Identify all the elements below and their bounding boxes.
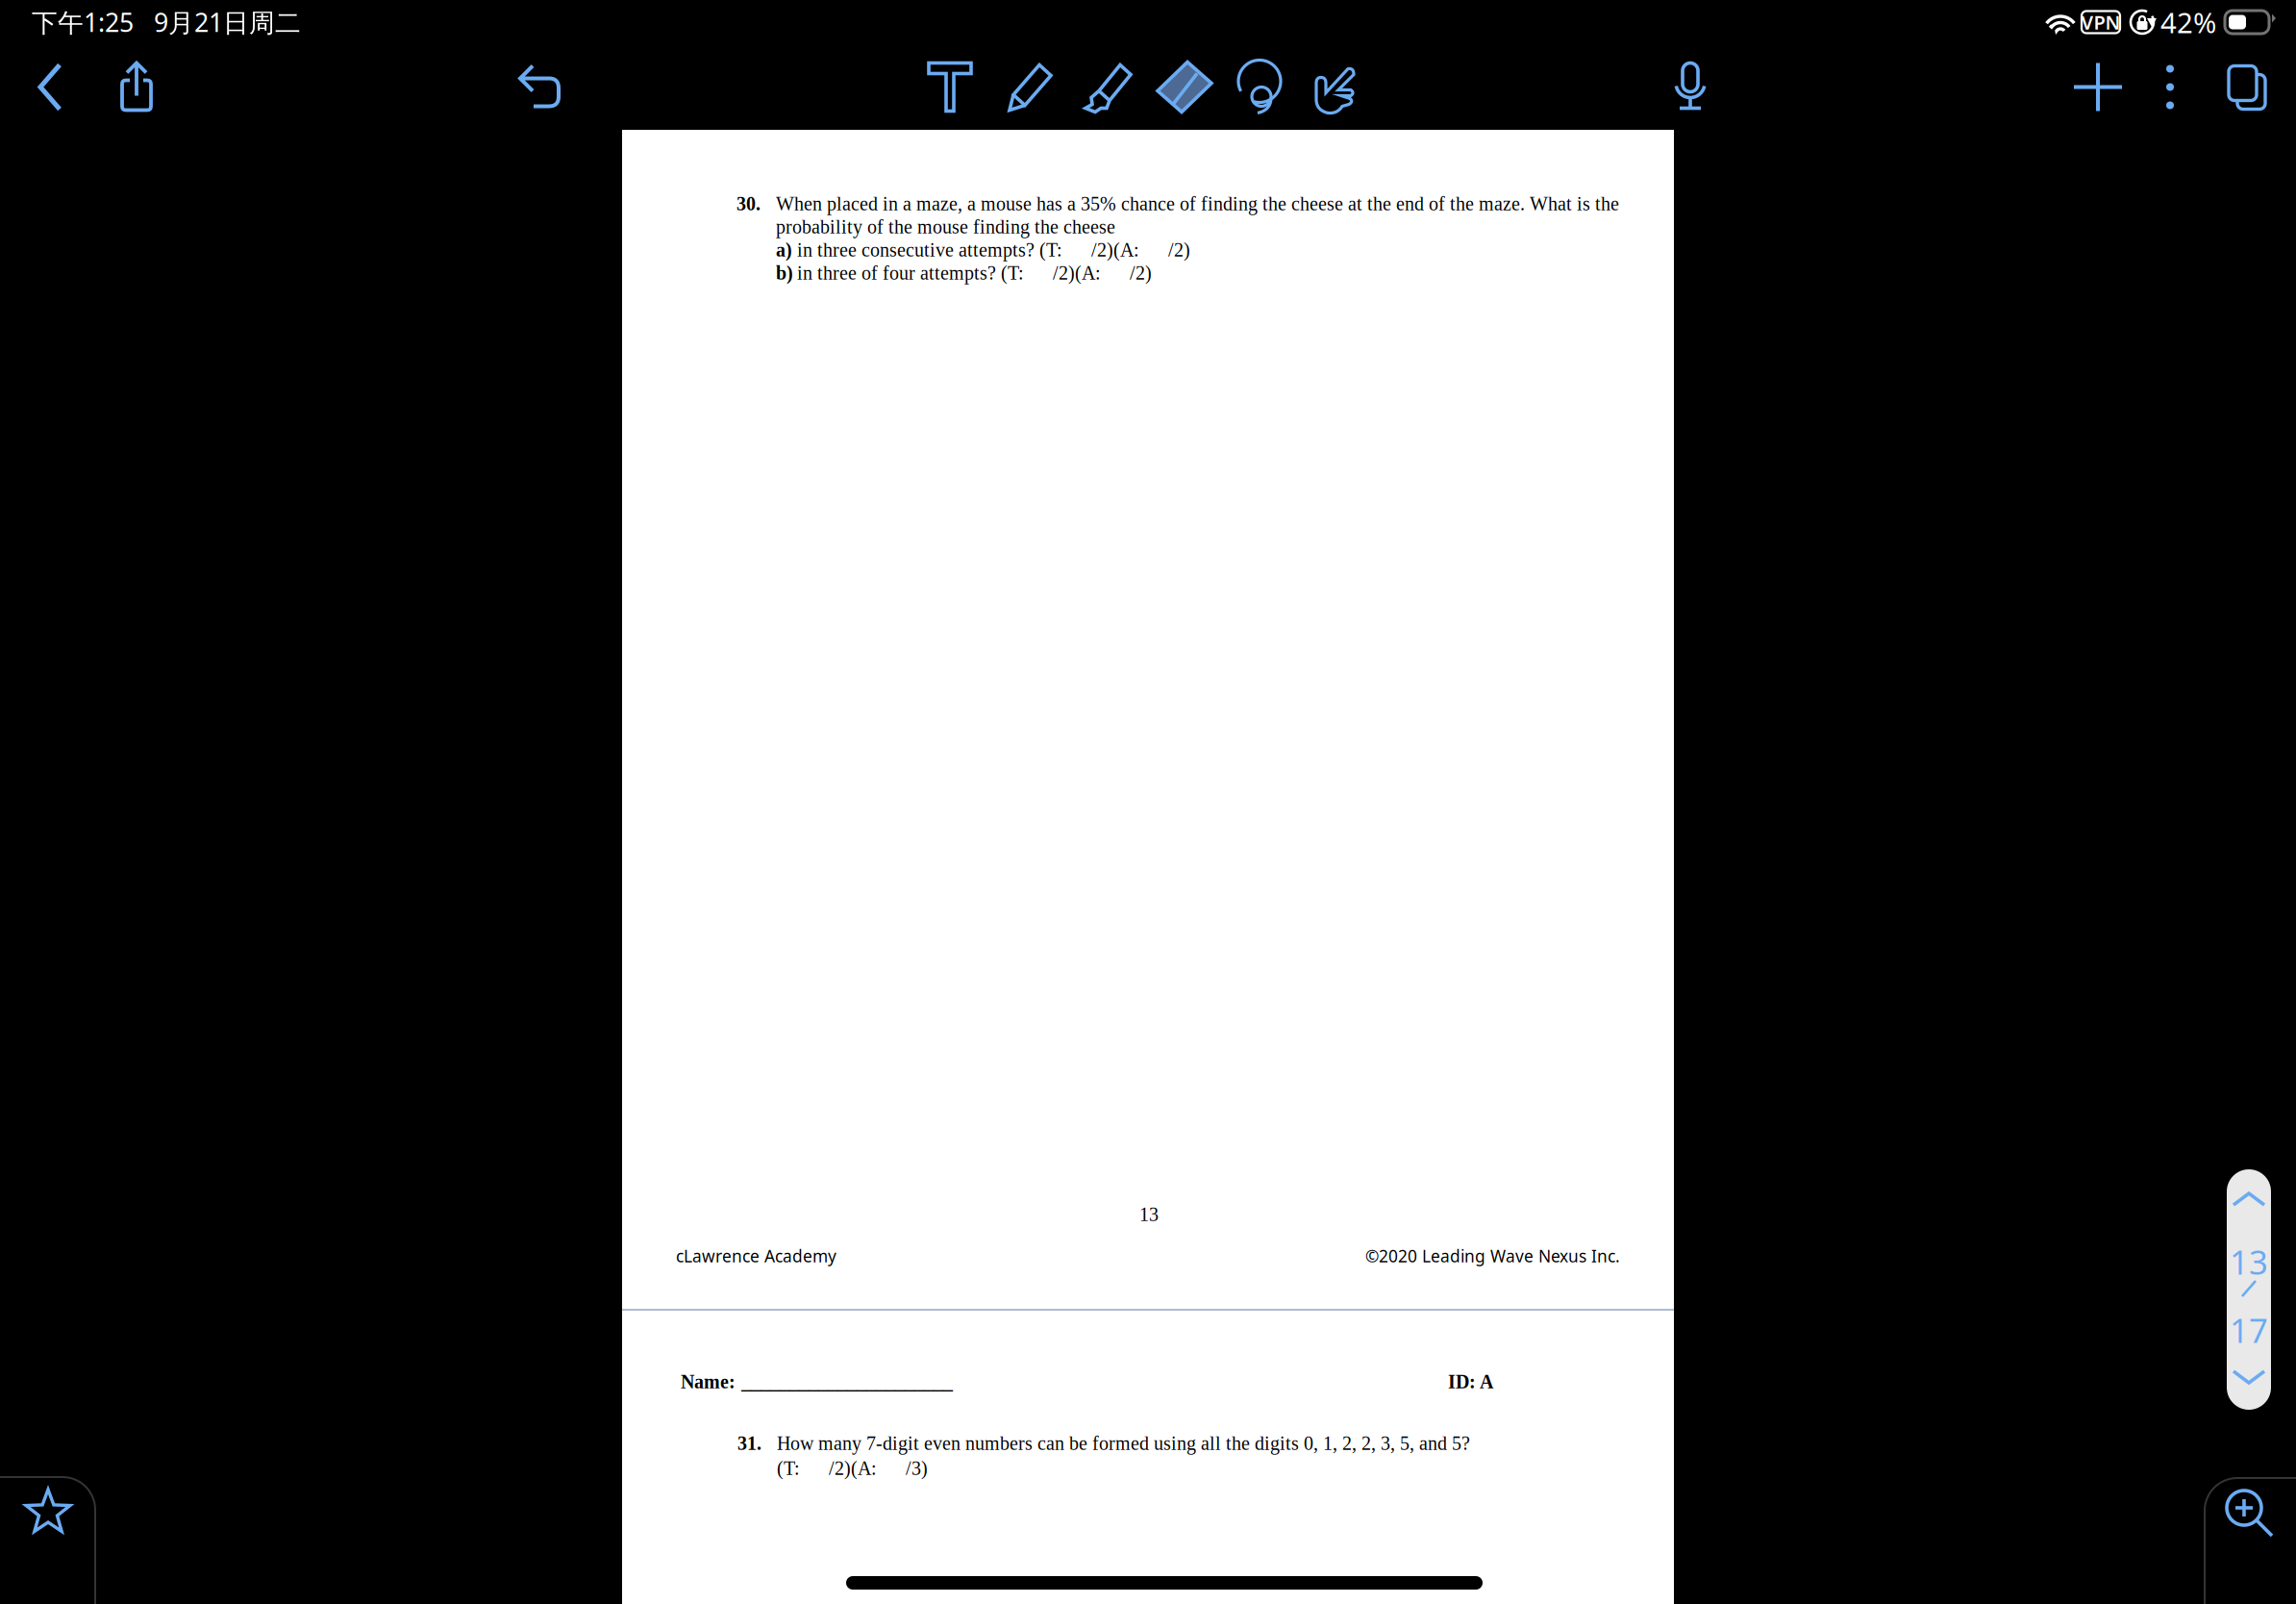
- staticText: VPN: [2081, 9, 2121, 35]
- button[interactable]: Zoom in: [2205, 1478, 2296, 1604]
- button[interactable]: Lasso select: [1221, 44, 1298, 130]
- button[interactable]: Hand: [1294, 44, 1371, 130]
- staticText: a): [776, 239, 792, 261]
- staticText: 42%: [2160, 3, 2216, 41]
- staticText: 30.: [736, 193, 761, 214]
- staticText: cLawrence Academy: [676, 1245, 836, 1267]
- staticText: in three of four attempts? (T: /2)(A: /2…: [797, 262, 1152, 284]
- button[interactable]: Pen: [991, 44, 1068, 130]
- staticText: ©2020 Leading Wave Nexus Inc.: [1365, 1245, 1620, 1267]
- staticText: Name:: [681, 1371, 736, 1392]
- button[interactable]: Text tool: [911, 44, 988, 130]
- button[interactable]: Eraser: [1146, 44, 1223, 130]
- staticText: ID: A: [1448, 1371, 1493, 1392]
- staticText: ______________________: [741, 1371, 953, 1392]
- staticText: 31.: [737, 1433, 761, 1454]
- staticText: 17: [2230, 1308, 2268, 1352]
- button[interactable]: Back: [12, 44, 88, 130]
- staticText: When placed in a maze, a mouse has a 35%…: [776, 193, 1619, 214]
- button[interactable]: Page thumbnails: [2209, 44, 2286, 130]
- staticText: 下午1:25 9月21日周二: [32, 5, 301, 39]
- staticText: How many 7-digit even numbers can be for…: [777, 1433, 1470, 1454]
- button[interactable]: Share: [98, 44, 175, 130]
- button[interactable]: Record audio: [1652, 44, 1729, 130]
- staticText: 13: [2230, 1240, 2268, 1284]
- button[interactable]: Undo: [502, 44, 579, 130]
- button[interactable]: Bookmark: [0, 1477, 95, 1604]
- button[interactable]: More options: [2132, 44, 2209, 130]
- staticText: 13: [1139, 1204, 1159, 1225]
- staticText: in three consecutive attempts? (T: /2)(A…: [797, 239, 1190, 261]
- button[interactable]: Add: [2059, 44, 2136, 130]
- button[interactable]: Page 13 of 17: [2227, 1169, 2271, 1410]
- staticText: probability of the mouse finding the che…: [776, 216, 1115, 238]
- button[interactable]: Highlighter: [1069, 44, 1146, 130]
- staticText: (T: /2)(A: /3): [777, 1458, 928, 1479]
- staticText: b): [776, 262, 793, 284]
